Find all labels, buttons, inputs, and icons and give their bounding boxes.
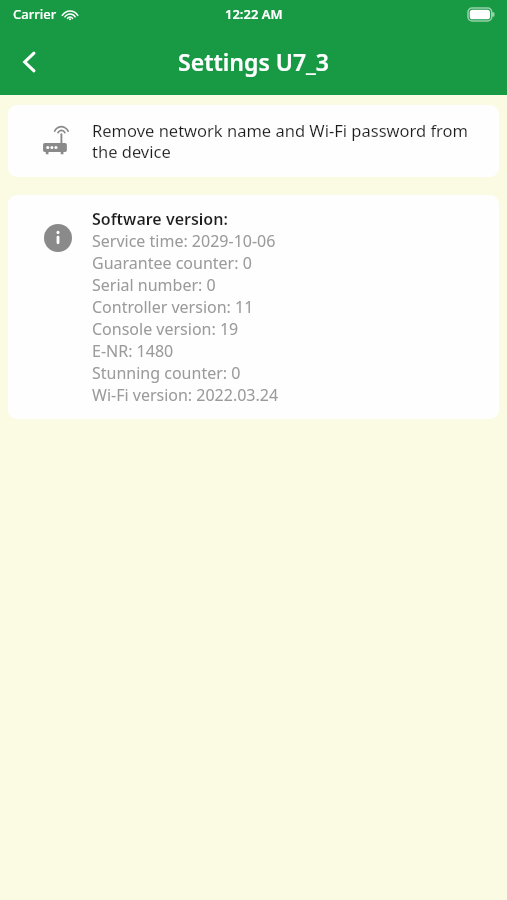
staticText: Guarantee counter: 0 <box>92 252 252 274</box>
button[interactable]: Remove network name and Wi-Fi password f… <box>8 105 499 177</box>
button[interactable]: Software version: <box>8 195 499 419</box>
button[interactable]: Back <box>8 40 52 84</box>
staticText: Settings U7_3 <box>178 46 329 77</box>
staticText: Stunning counter: 0 <box>92 362 241 384</box>
staticText: Wi-Fi version: 2022.03.24 <box>92 384 279 406</box>
staticText: Service time: 2029-10-06 <box>92 230 276 252</box>
staticText: E-NR: 1480 <box>92 340 174 362</box>
staticText: Remove network name and Wi-Fi password f… <box>92 119 483 163</box>
staticText: Serial number: 0 <box>92 274 216 296</box>
staticText: 12:22 AM <box>225 5 283 23</box>
staticText: Carrier <box>13 5 57 23</box>
staticText: Software version: <box>92 208 228 230</box>
staticText: Console version: 19 <box>92 318 239 340</box>
staticText: Controller version: 11 <box>92 296 254 318</box>
